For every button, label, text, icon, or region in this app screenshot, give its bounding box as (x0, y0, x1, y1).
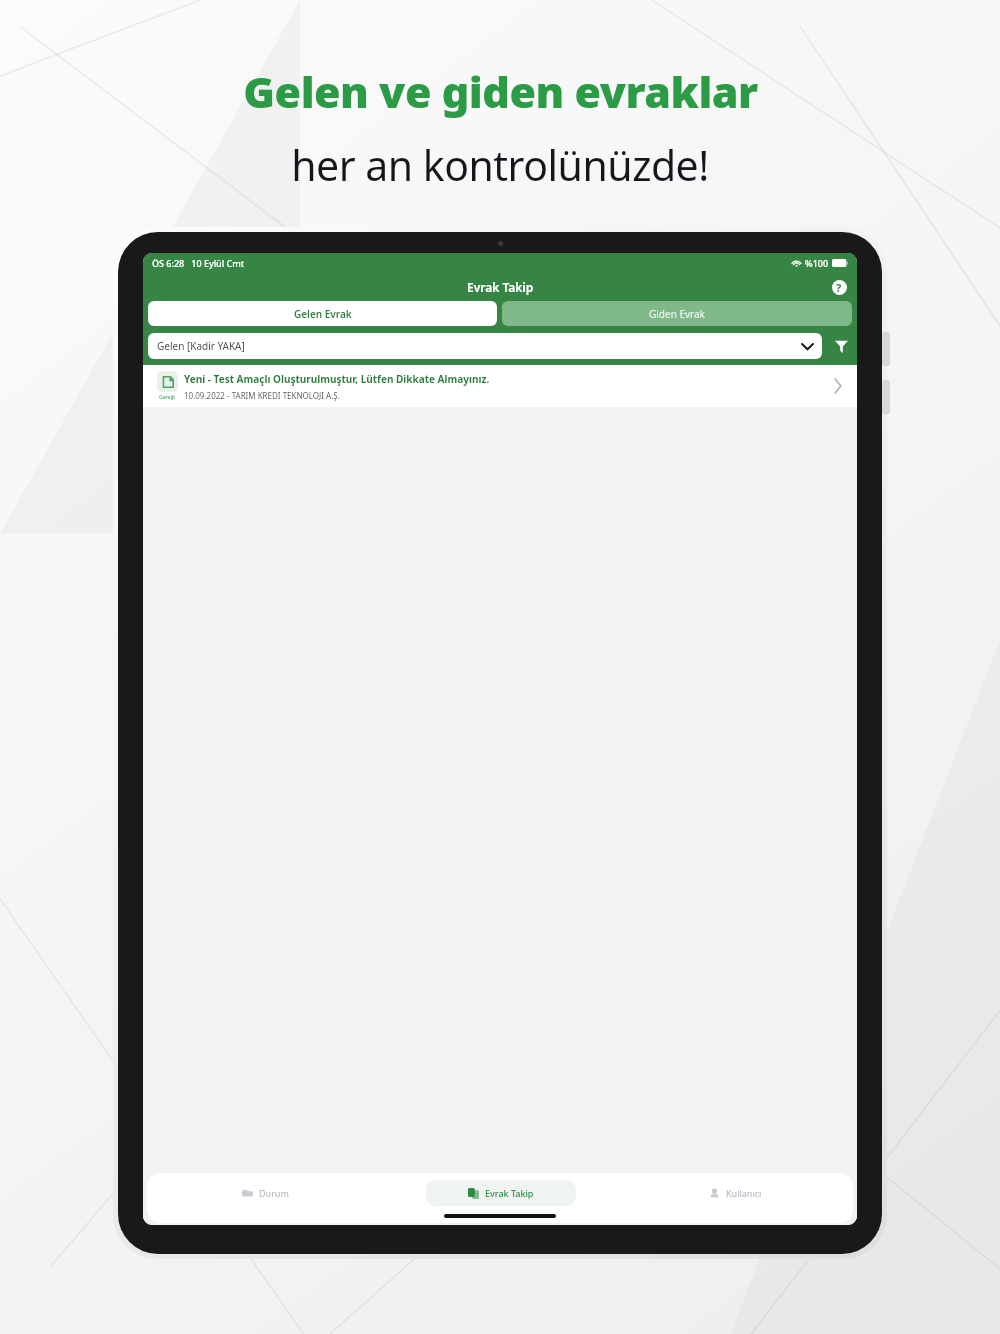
staticText: Gelen [Kadir YAKA] (157, 339, 245, 353)
button[interactable]: Filtrele (830, 335, 852, 357)
staticText: ÖS 6:28 10 Eylül Cmt (152, 257, 245, 269)
staticText: Evrak Takip (467, 279, 534, 295)
staticText: Gelen ve giden evraklar (243, 62, 758, 121)
staticText: Gereği (159, 394, 175, 401)
button[interactable]: Durum (232, 1180, 299, 1206)
button[interactable]: Gereği (143, 365, 857, 407)
staticText: Durum (259, 1187, 289, 1199)
button[interactable]: Giden Evrak (502, 301, 852, 326)
staticText: Evrak Takip (485, 1187, 534, 1199)
staticText: Kullanıcı (726, 1187, 762, 1199)
button[interactable]: Evrak Takip (426, 1180, 576, 1206)
staticText: Gelen Evrak (294, 307, 352, 321)
staticText: Yeni - Test Amaçlı Oluşturulmuştur, Lütf… (184, 372, 490, 386)
button[interactable]: Kullanıcı (699, 1180, 772, 1206)
staticText: ? (836, 280, 842, 295)
button[interactable]: Yardım (829, 277, 849, 297)
staticText: Giden Evrak (649, 307, 705, 321)
staticText: 10.09.2022 - TARIM KREDI TEKNOLOJI A.Ş. (184, 390, 340, 401)
staticText: %100 (805, 257, 829, 269)
button[interactable]: Gelen [Kadir YAKA] (148, 333, 822, 359)
staticText: her an kontrolünüzde! (291, 137, 709, 193)
button[interactable]: Gelen Evrak (148, 301, 497, 326)
